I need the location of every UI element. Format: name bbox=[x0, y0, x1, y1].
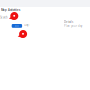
button[interactable]: Book bbox=[12, 24, 22, 28]
staticText: Search bbox=[0, 16, 8, 19]
staticText: Details bbox=[64, 20, 73, 24]
staticText: Day 1 bbox=[24, 23, 31, 27]
staticText: Plan your day bbox=[64, 24, 82, 28]
staticText: Book bbox=[15, 25, 19, 27]
staticText: Map Activities bbox=[1, 8, 20, 12]
